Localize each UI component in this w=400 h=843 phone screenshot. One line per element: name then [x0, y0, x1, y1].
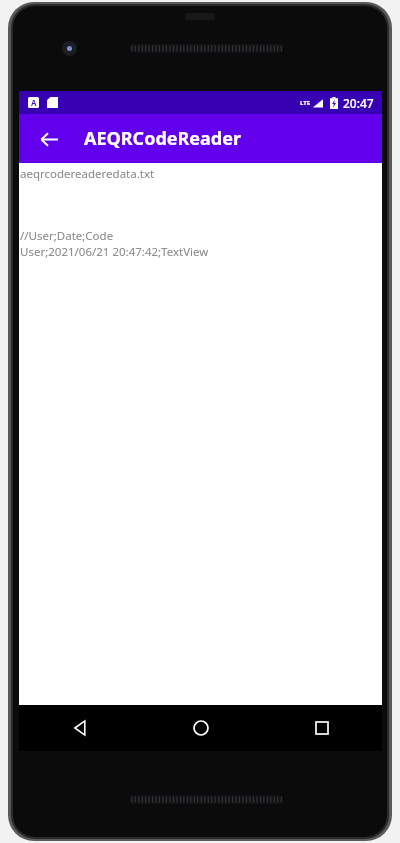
button[interactable]: Back [19, 705, 140, 751]
staticText: 20:47 [343, 95, 374, 111]
staticText: LTE [300, 99, 311, 107]
staticText: A [31, 97, 37, 108]
staticText: AEQRCodeReader [84, 126, 242, 151]
button[interactable]: Back [32, 122, 66, 156]
staticText: //User;Date;Code User;2021/06/21 20:47:4… [20, 228, 209, 259]
staticText: aeqrcodereaderedata.txt [20, 166, 155, 182]
button[interactable]: Home [140, 705, 261, 751]
button[interactable]: Recent apps [261, 705, 382, 751]
